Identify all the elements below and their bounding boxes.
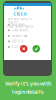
staticText: login details xyxy=(12,88,44,95)
staticText: cisco xyxy=(13,10,26,17)
button[interactable]: Approve xyxy=(32,45,40,52)
staticText: Cisco Secure Access xyxy=(7,25,33,28)
staticText: Ann Smith xyxy=(12,23,26,26)
staticText: Are you trying to log in? xyxy=(8,17,32,24)
staticText: Boston, MA xyxy=(12,34,28,38)
staticText: 2:22 PM xyxy=(12,45,24,49)
staticText: Verify it's you with xyxy=(5,80,51,87)
staticText: iOS 17.4 xyxy=(12,40,24,43)
staticText: Cisco Secure xyxy=(12,28,29,32)
button[interactable]: Deny xyxy=(20,45,27,52)
